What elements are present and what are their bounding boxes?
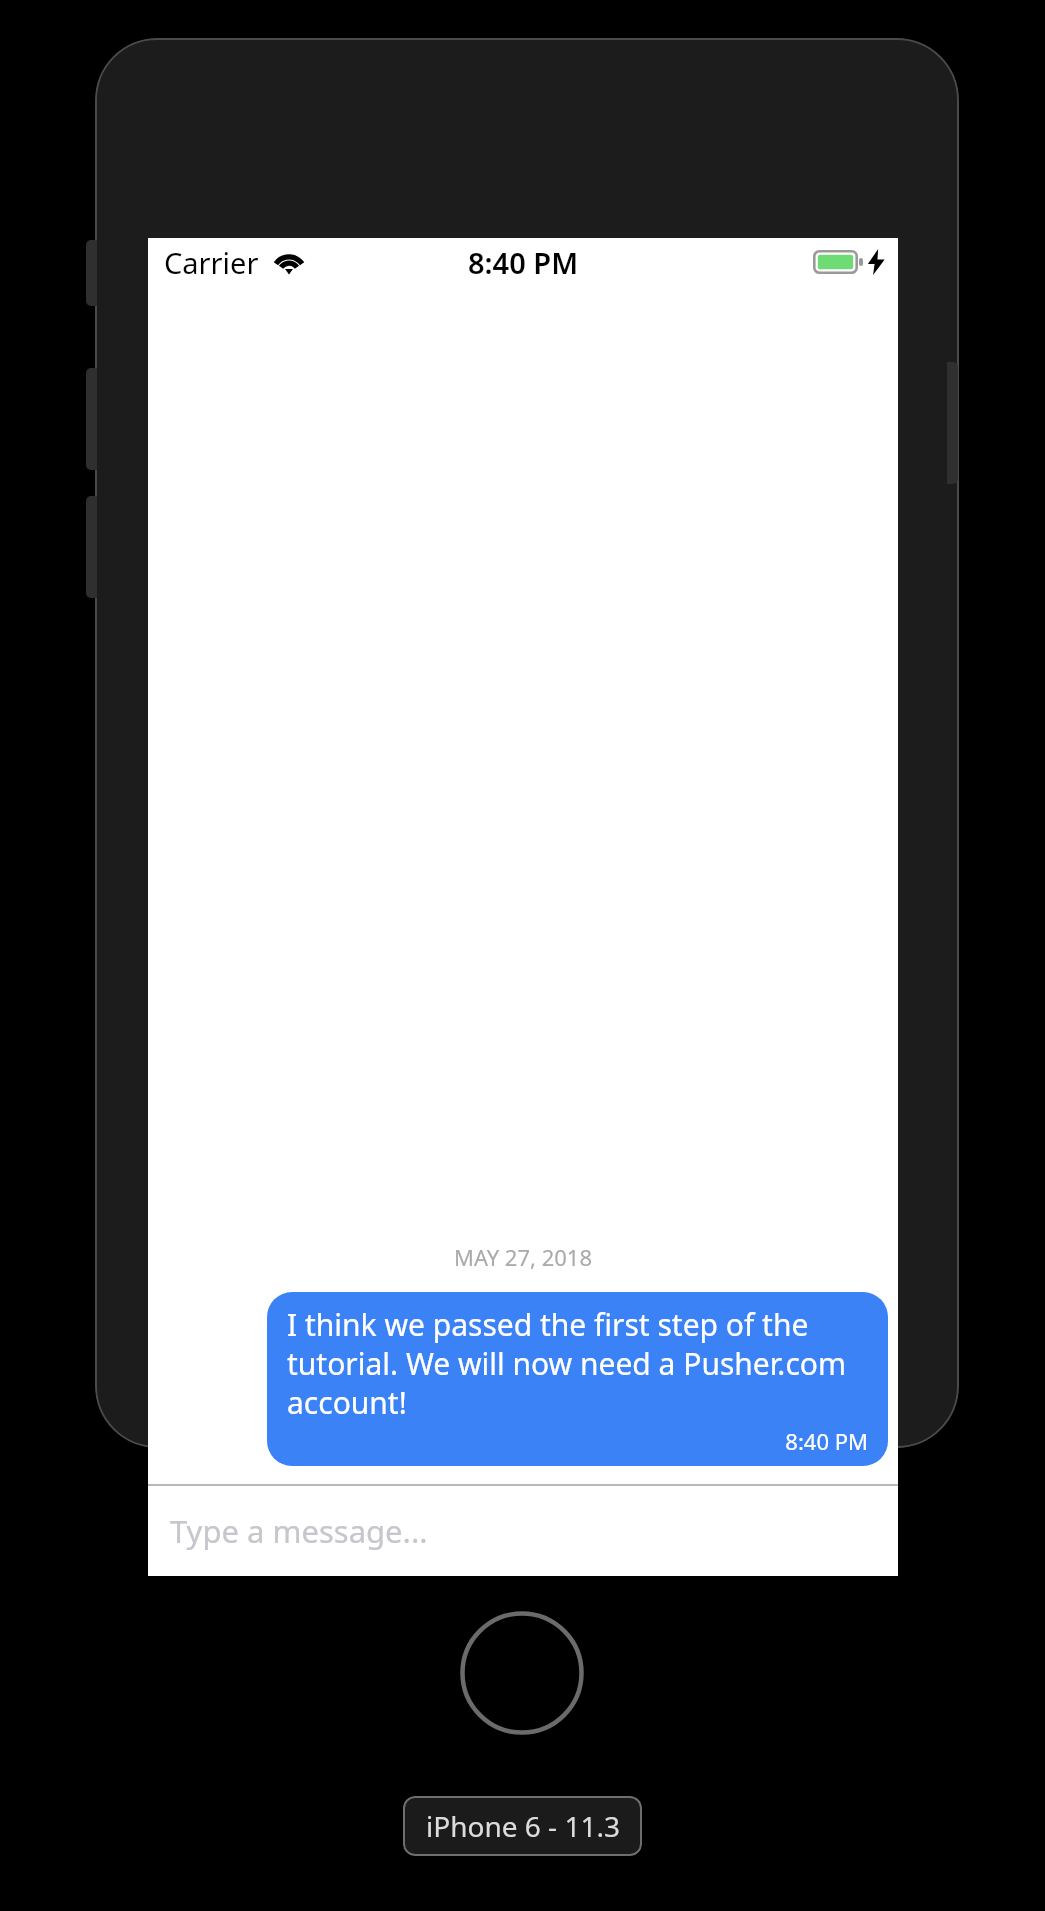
staticText: iPhone 6 - 11.3: [426, 1807, 620, 1845]
button[interactable]: I think we passed the first step of the …: [267, 1292, 888, 1466]
button[interactable]: iPhone 6 - 11.3: [403, 1796, 642, 1856]
staticText: Type a message...: [170, 1510, 428, 1552]
button[interactable]: Home: [460, 1611, 584, 1735]
staticText: MAY 27, 2018: [148, 1242, 898, 1272]
staticText: 8:40 PM: [468, 243, 579, 282]
staticText: Carrier: [164, 243, 259, 282]
button[interactable]: Type a message...: [148, 1486, 898, 1576]
staticText: 8:40 PM: [287, 1426, 868, 1456]
staticText: I think we passed the first step of the …: [287, 1304, 868, 1422]
